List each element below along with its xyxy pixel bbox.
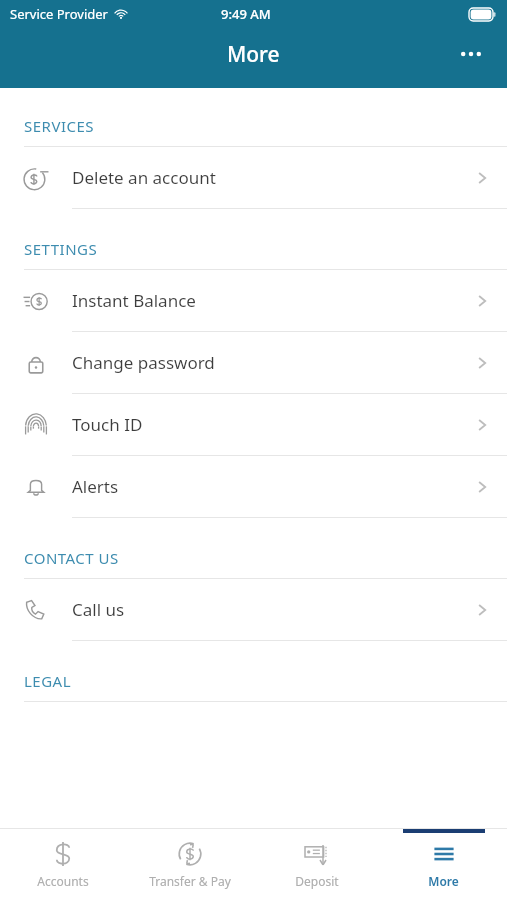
- button[interactable]: Transfer & Pay: [126, 829, 253, 900]
- staticText: SETTINGS: [24, 239, 98, 259]
- staticText: More: [428, 873, 459, 889]
- button[interactable]: Accounts: [0, 829, 126, 900]
- button[interactable]: Alerts: [0, 456, 507, 518]
- button[interactable]: More: [380, 829, 507, 900]
- staticText: SERVICES: [24, 116, 95, 136]
- button[interactable]: More options: [447, 34, 495, 82]
- staticText: Alerts: [72, 475, 119, 498]
- button[interactable]: Delete an account: [0, 147, 507, 209]
- staticText: Change password: [72, 351, 215, 374]
- button[interactable]: Deposit: [253, 829, 380, 900]
- staticText: Delete an account: [72, 166, 216, 189]
- staticText: CONTACT US: [24, 548, 119, 568]
- staticText: Transfer & Pay: [149, 873, 231, 889]
- staticText: Deposit: [295, 873, 339, 889]
- staticText: Instant Balance: [72, 289, 196, 312]
- staticText: More: [227, 40, 280, 69]
- staticText: Touch ID: [72, 413, 143, 436]
- staticText: Accounts: [37, 873, 89, 889]
- staticText: Service Provider: [10, 5, 108, 23]
- button[interactable]: Touch ID: [0, 394, 507, 456]
- button[interactable]: Call us: [0, 579, 507, 641]
- staticText: LEGAL: [24, 671, 72, 691]
- button[interactable]: Instant Balance: [0, 270, 507, 332]
- button[interactable]: Change password: [0, 332, 507, 394]
- staticText: 9:49 AM: [221, 5, 271, 23]
- staticText: Call us: [72, 598, 125, 621]
